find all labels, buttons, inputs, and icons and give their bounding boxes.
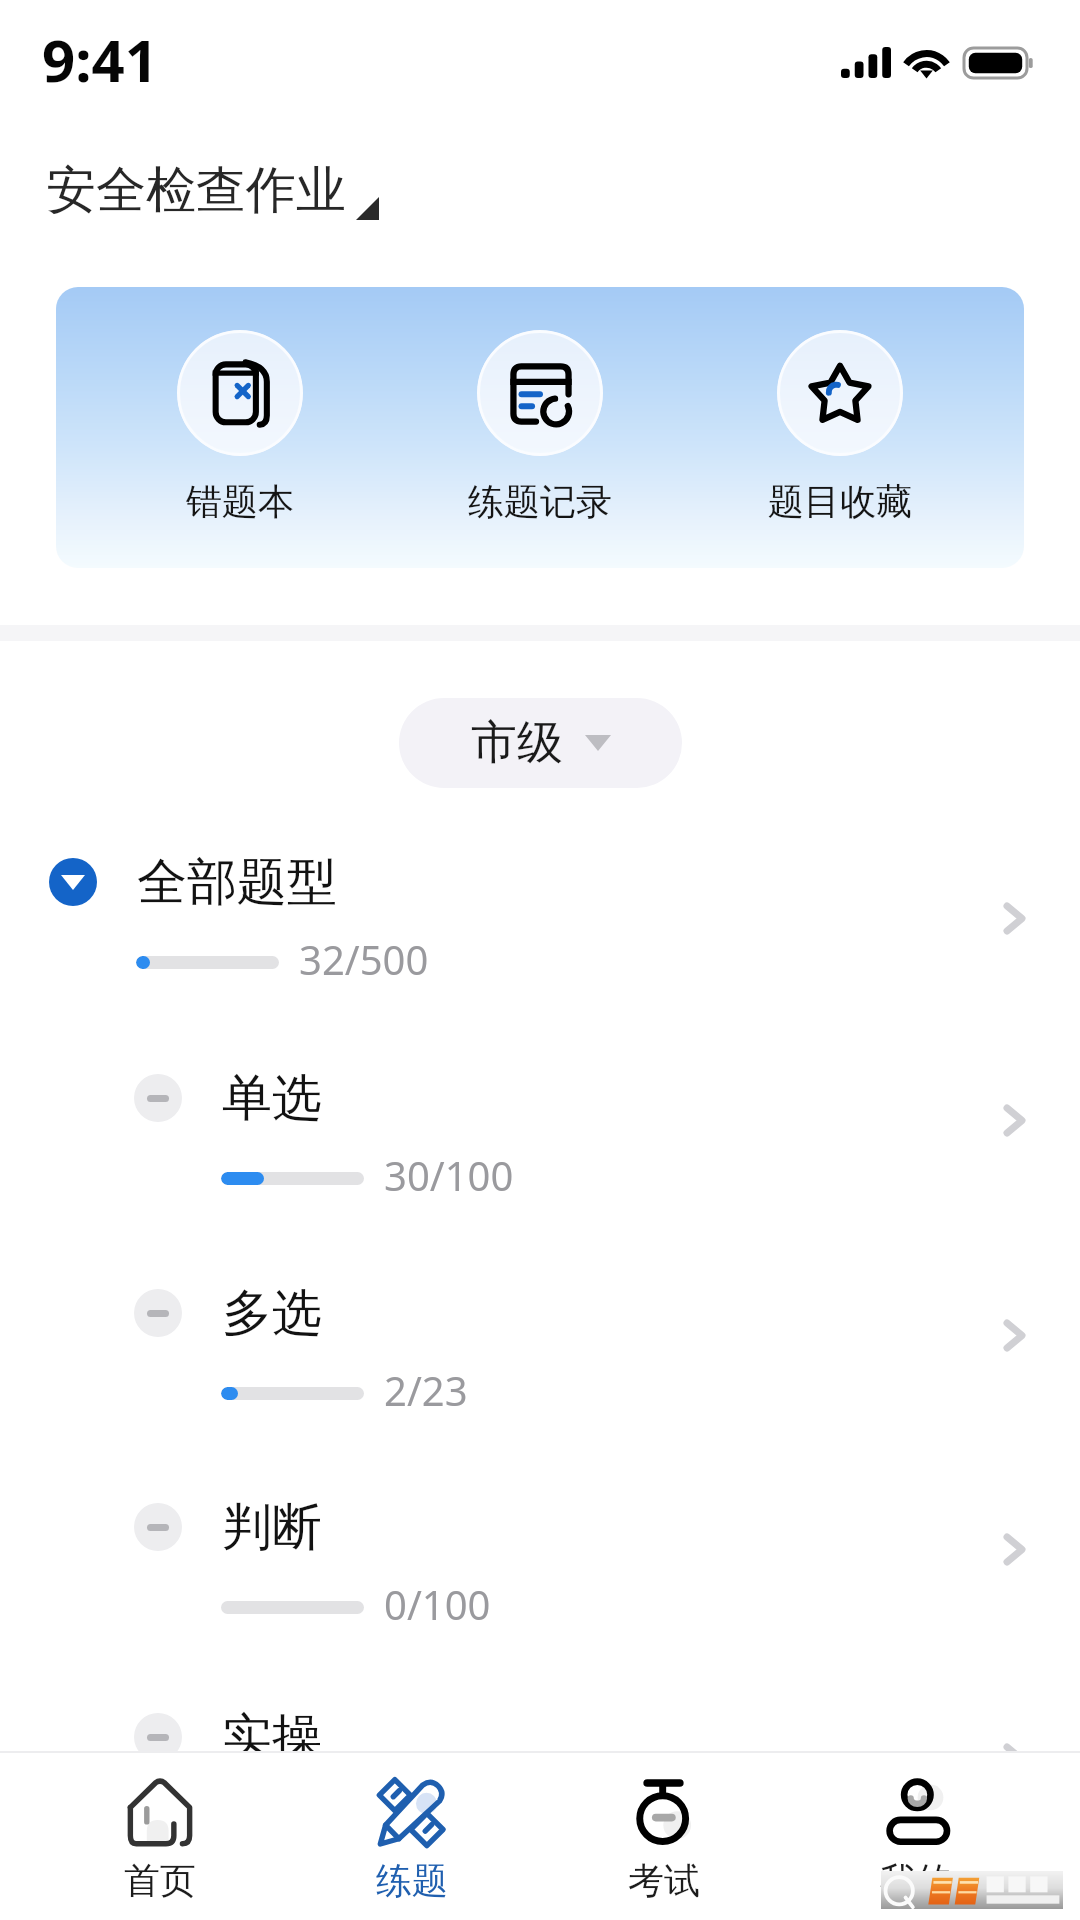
staticText: 2/23 xyxy=(384,1363,468,1417)
button[interactable]: 判断 xyxy=(0,1420,1080,1635)
staticText: 市级 xyxy=(471,714,563,772)
staticText: 全部题型 xyxy=(137,851,337,914)
button[interactable]: 安全检查作业 xyxy=(46,159,379,222)
button[interactable]: 多选 xyxy=(0,1206,1080,1421)
button[interactable]: 全部题型 xyxy=(0,775,1080,990)
staticText: 0/100 xyxy=(384,1787,491,1841)
staticText: 单选 xyxy=(222,1067,322,1130)
button[interactable]: Practice xyxy=(327,1779,497,1903)
staticText: 首页 xyxy=(124,1858,196,1903)
staticText: 题目收藏 xyxy=(768,479,912,524)
button[interactable]: 练题记录 xyxy=(450,330,630,524)
staticText: 安全检查作业 xyxy=(46,159,346,222)
staticText: 判断 xyxy=(222,1496,322,1559)
staticText: 考试 xyxy=(628,1858,700,1903)
staticText: 多选 xyxy=(222,1282,322,1345)
staticText: 32/500 xyxy=(299,932,429,986)
button[interactable]: 题目收藏 xyxy=(750,330,930,524)
staticText: 实操 xyxy=(222,1706,322,1769)
staticText: 练题 xyxy=(376,1858,448,1903)
button[interactable]: Home xyxy=(75,1779,245,1903)
staticText: 错题本 xyxy=(186,479,294,524)
button[interactable]: Profile xyxy=(831,1779,1001,1903)
staticText: 我的 xyxy=(880,1858,952,1903)
button[interactable]: Exam xyxy=(579,1779,749,1903)
button[interactable]: 单选 xyxy=(0,991,1080,1206)
staticText: 30/100 xyxy=(384,1148,514,1202)
button[interactable]: 市级 xyxy=(399,698,682,788)
staticText: 练题记录 xyxy=(468,479,612,524)
staticText: 9:41 xyxy=(42,20,158,99)
button[interactable]: 错题本 xyxy=(150,330,330,524)
button[interactable]: 实操 xyxy=(0,1630,1080,1845)
staticText: 0/100 xyxy=(384,1577,491,1631)
